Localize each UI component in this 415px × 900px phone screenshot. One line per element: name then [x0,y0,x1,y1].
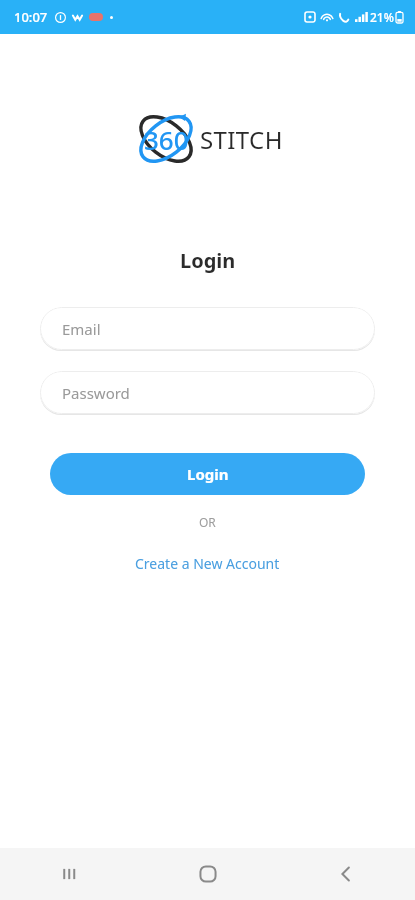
staticText: Login [180,247,236,274]
staticText: Create a New Account [135,554,280,573]
button[interactable]: Login [50,453,365,495]
staticText: STITCH [200,123,283,156]
staticText: Password [62,383,130,403]
staticText: 21% [370,9,394,25]
button[interactable]: Recent apps [0,848,139,900]
button[interactable]: Home [139,848,277,900]
button[interactable]: Create a New Account [127,550,288,577]
button[interactable]: Password [40,371,375,414]
staticText: 10:07 [14,8,48,26]
staticText: Email [62,319,101,339]
staticText: OR [199,514,216,530]
button[interactable]: Back [277,848,415,900]
staticText: 360 [144,122,189,157]
button[interactable]: Email [40,307,375,350]
staticText: Login [187,464,229,484]
